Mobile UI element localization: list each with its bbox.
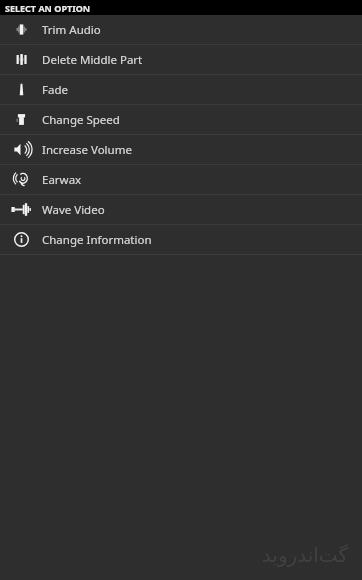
staticText: Delete Middle Part — [42, 52, 143, 68]
staticText: Change Speed — [42, 112, 120, 128]
button[interactable]: Increase Volume — [0, 135, 362, 164]
button[interactable]: Fade — [0, 75, 362, 104]
staticText: Trim Audio — [42, 22, 101, 38]
button[interactable]: Change Speed — [0, 105, 362, 134]
button[interactable]: Delete Middle Part — [0, 45, 362, 74]
staticText: Increase Volume — [42, 142, 132, 158]
staticText: SELECT AN OPTION — [5, 2, 91, 14]
staticText: Change Information — [42, 232, 152, 248]
staticText: Fade — [42, 82, 68, 98]
staticText: Wave Video — [42, 202, 105, 218]
staticText: گت‌اندروید — [261, 543, 348, 566]
staticText: Earwax — [42, 172, 82, 188]
button[interactable]: Wave Video — [0, 195, 362, 224]
button[interactable]: Trim Audio — [0, 15, 362, 44]
button[interactable]: Change Information — [0, 225, 362, 254]
button[interactable]: Earwax — [0, 165, 362, 194]
